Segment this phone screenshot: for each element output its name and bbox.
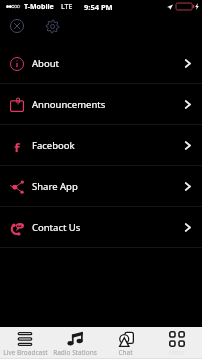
staticText: About xyxy=(32,57,59,70)
staticText: Share App xyxy=(32,180,78,193)
button[interactable]: f xyxy=(0,125,202,165)
button[interactable]: Announcements xyxy=(0,84,202,124)
button[interactable]: Chat xyxy=(100,327,151,358)
staticText: LTE xyxy=(61,2,73,12)
button[interactable]: Contact Us xyxy=(0,207,202,247)
button[interactable]: Close xyxy=(6,15,28,37)
staticText: f xyxy=(14,138,20,152)
staticText: Radio Stations xyxy=(53,348,97,357)
staticText: 9:54 PM xyxy=(84,2,113,12)
staticText: T-Mobile xyxy=(24,2,54,12)
staticText: Announcements xyxy=(32,98,106,111)
staticText: Contact Us xyxy=(32,221,81,234)
button[interactable]: Share App xyxy=(0,166,202,206)
staticText: Chat xyxy=(118,348,133,357)
staticText: More xyxy=(168,348,185,357)
button[interactable]: About xyxy=(0,43,202,83)
button[interactable]: Settings xyxy=(41,15,63,37)
button[interactable]: More xyxy=(151,327,202,358)
staticText: Live Broadcast xyxy=(3,348,48,357)
staticText: Facebook xyxy=(32,139,75,152)
button[interactable]: Live Broadcast xyxy=(0,327,50,358)
button[interactable]: Radio Stations xyxy=(50,327,100,358)
